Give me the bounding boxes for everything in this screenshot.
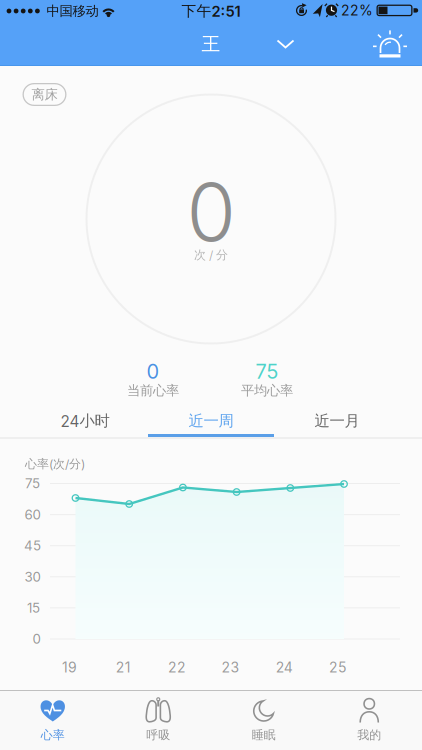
button[interactable]: 近一周: [148, 406, 274, 436]
staticText: 25: [329, 659, 347, 676]
staticText: 近一周: [188, 411, 233, 431]
button[interactable]: 睡眠: [211, 691, 316, 750]
staticText: 24小时: [60, 411, 109, 431]
button[interactable]: 心率: [0, 691, 105, 750]
button[interactable]: 呼吸: [105, 691, 211, 750]
staticText: 21: [116, 659, 131, 676]
button[interactable]: 24小时: [22, 406, 148, 436]
button[interactable]: 报警: [368, 24, 412, 64]
staticText: 王: [201, 32, 220, 56]
staticText: 呼吸: [146, 727, 170, 742]
staticText: 平均心率: [241, 382, 293, 399]
staticText: 24: [276, 659, 293, 676]
button[interactable]: 王: [101, 22, 321, 66]
staticText: 45: [24, 538, 41, 554]
staticText: 中国移动: [46, 3, 98, 19]
staticText: 75: [25, 475, 40, 491]
staticText: 心率: [41, 727, 65, 742]
staticText: 75: [255, 359, 278, 384]
staticText: 23: [222, 659, 240, 676]
staticText: 22: [168, 659, 186, 676]
staticText: 15: [27, 600, 40, 616]
staticText: 近一月: [314, 411, 359, 431]
staticText: 心率(次/分): [25, 456, 85, 471]
button[interactable]: 离床: [22, 83, 66, 106]
button[interactable]: 我的: [316, 691, 422, 750]
staticText: 我的: [357, 727, 381, 742]
staticText: 次 / 分: [194, 247, 228, 262]
staticText: 0: [32, 631, 40, 647]
staticText: 当前心率: [127, 382, 179, 399]
staticText: 0: [186, 164, 235, 260]
staticText: 22%: [341, 2, 373, 19]
staticText: 19: [62, 659, 77, 676]
staticText: 0: [146, 359, 159, 384]
staticText: 离床: [31, 86, 57, 103]
staticText: 下午2:51: [181, 2, 240, 20]
button[interactable]: 近一月: [274, 406, 400, 436]
staticText: 60: [24, 506, 40, 523]
staticText: 睡眠: [252, 727, 276, 742]
staticText: 30: [24, 569, 40, 585]
